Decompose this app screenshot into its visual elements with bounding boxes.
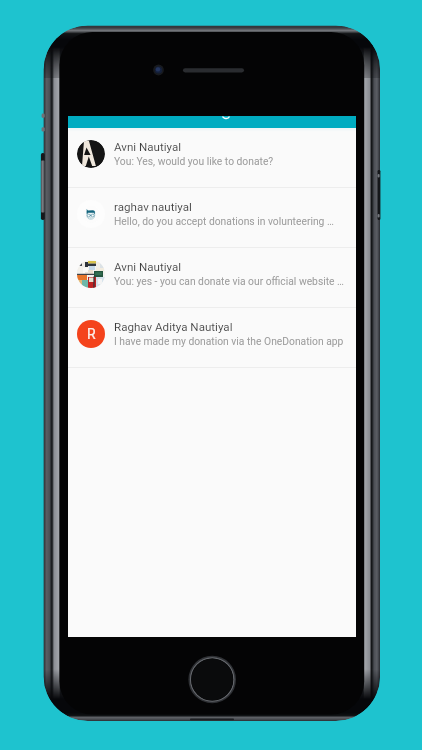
staticText: Avni Nautiyal — [114, 140, 182, 154]
staticText: I have made my donation via the OneDonat… — [114, 335, 344, 347]
staticText: Raghav Aditya Nautiyal — [114, 320, 233, 334]
staticText: You: Yes, would you like to donate? — [114, 155, 274, 167]
staticText: Hello, do you accept donations in volunt… — [114, 215, 334, 227]
button[interactable]: Avni Nautiyal — [68, 128, 356, 188]
button[interactable]: R — [68, 308, 356, 368]
button[interactable]: Avni Nautiyal — [68, 248, 356, 308]
staticText: R — [87, 326, 96, 342]
other: Chats — [68, 116, 356, 128]
staticText: Avni Nautiyal — [114, 260, 182, 274]
staticText: raghav nautiyal — [114, 200, 192, 214]
staticText: You: yes - you can donate via our offici… — [114, 275, 344, 287]
button[interactable]: raghav nautiyal — [68, 188, 356, 248]
